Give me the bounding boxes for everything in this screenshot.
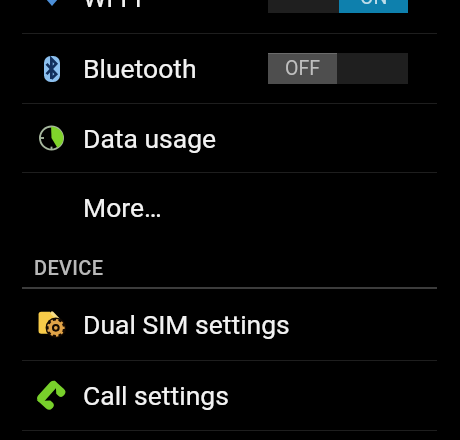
staticText: ON xyxy=(360,0,388,9)
staticText: Dual SIM settings xyxy=(83,309,290,340)
staticText: DEVICE xyxy=(34,256,104,279)
staticText: Call settings xyxy=(83,380,229,411)
staticText: Bluetooth xyxy=(83,53,197,84)
staticText: More… xyxy=(83,192,162,223)
staticText: Data usage xyxy=(83,123,217,154)
button[interactable]: Switch on xyxy=(268,0,408,13)
button[interactable]: Wi-Fi xyxy=(0,0,460,33)
staticText: Wi-Fi xyxy=(83,0,142,13)
button[interactable]: Switch off xyxy=(268,53,408,84)
button[interactable]: Data usage xyxy=(0,104,460,172)
button[interactable]: Call settings xyxy=(0,361,460,430)
button[interactable]: Dual SIM settings xyxy=(0,289,460,360)
button[interactable]: Bluetooth xyxy=(0,34,460,103)
button[interactable]: More… xyxy=(0,173,460,241)
staticText: OFF xyxy=(285,57,320,80)
